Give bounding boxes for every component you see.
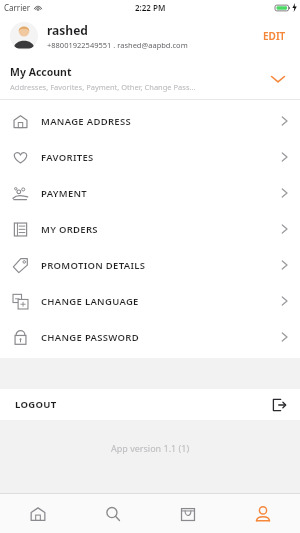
button[interactable]: PAYMENT	[0, 175, 300, 211]
staticText: MANAGE ADDRESS	[41, 115, 281, 128]
staticText: PAYMENT	[41, 187, 281, 200]
button[interactable]: PROMOTION DETAILS	[0, 247, 300, 283]
button[interactable]: MANAGE ADDRESS	[0, 103, 300, 139]
button[interactable]: CHANGE LANGUAGE	[0, 283, 300, 319]
staticText: EDIT	[263, 29, 286, 43]
button[interactable]: CHANGE PASSWORD	[0, 319, 300, 355]
staticText: FAVORITES	[41, 151, 281, 164]
other: Logout	[272, 398, 286, 412]
staticText: CHANGE PASSWORD	[41, 331, 281, 344]
button[interactable]: MY ORDERS	[0, 211, 300, 247]
button[interactable]: LOGOUT	[0, 389, 300, 420]
staticText: MY ORDERS	[41, 223, 281, 236]
button[interactable]: Search	[75, 494, 150, 533]
staticText: CHANGE LANGUAGE	[41, 295, 281, 308]
button[interactable]: Profile	[225, 494, 300, 533]
staticText: +88001922549551 . rashed@aapbd.com	[47, 40, 188, 50]
staticText: Addresses, Favorites, Payment, Other, Ch…	[10, 82, 196, 92]
button[interactable]: My Account	[0, 58, 300, 99]
button[interactable]: Home	[0, 494, 75, 533]
other: Collapse	[270, 74, 286, 84]
staticText: LOGOUT	[15, 398, 272, 411]
staticText: rashed	[47, 22, 88, 38]
button[interactable]: FAVORITES	[0, 139, 300, 175]
staticText: Carrier	[4, 2, 31, 13]
staticText: PROMOTION DETAILS	[41, 259, 281, 272]
button[interactable]: Bag	[150, 494, 225, 533]
button[interactable]: EDIT	[259, 26, 290, 46]
staticText: My Account	[10, 65, 72, 79]
staticText: 2:22 PM	[135, 2, 166, 13]
staticText: App version 1.1 (1)	[111, 442, 190, 454]
